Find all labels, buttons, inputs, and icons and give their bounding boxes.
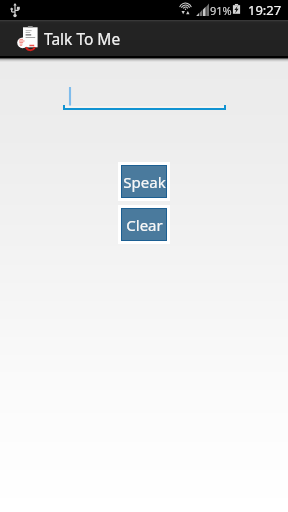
staticText: 91% (210, 3, 232, 18)
staticText: Talk To Me (44, 28, 121, 49)
staticText: Clear (126, 215, 163, 235)
staticText: Speak (123, 172, 166, 192)
button[interactable]: Text input (0, 86, 288, 110)
button[interactable]: Clear (122, 209, 166, 240)
button[interactable]: Speak (122, 166, 166, 197)
staticText: 19:27 (248, 1, 282, 19)
